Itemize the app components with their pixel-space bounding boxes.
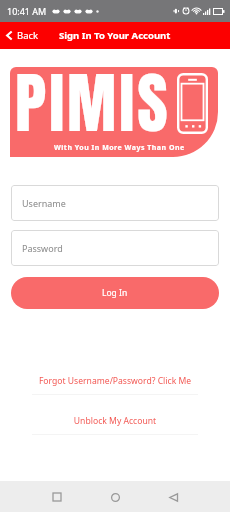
button[interactable]: Unblock My Account — [11, 415, 219, 435]
button[interactable]: Username — [11, 185, 219, 221]
staticText: Log In — [102, 287, 128, 299]
staticText: Forgot Username/Password? Click Me — [11, 375, 219, 387]
button[interactable]: Password — [11, 230, 219, 266]
button[interactable]: Log In — [11, 277, 219, 309]
staticText: Password — [22, 242, 63, 254]
staticText: With You In More Ways Than One — [54, 143, 185, 153]
button[interactable]: Recents — [42, 482, 72, 512]
staticText: Sign In To Your Account — [59, 29, 171, 42]
staticText: Back — [17, 29, 39, 42]
button[interactable]: Back — [0, 29, 45, 42]
staticText: Username — [22, 197, 66, 209]
staticText: Unblock My Account — [11, 415, 219, 427]
staticText: 10:41 AM — [7, 5, 47, 17]
staticText: PIMIS — [15, 67, 171, 143]
button[interactable]: Back — [158, 482, 188, 512]
button[interactable]: Forgot Username/Password? Click Me — [11, 375, 219, 395]
button[interactable]: Home — [100, 482, 130, 512]
